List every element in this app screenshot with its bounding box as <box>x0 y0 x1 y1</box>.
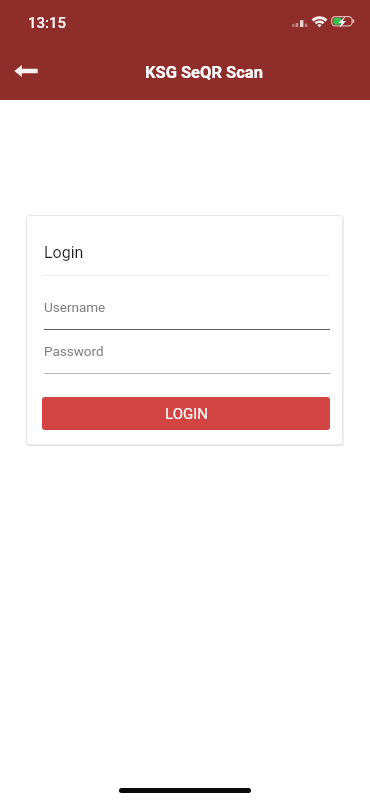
staticText: Login <box>44 243 84 262</box>
staticText: Password <box>44 343 104 359</box>
staticText: Username <box>44 299 106 315</box>
staticText: 13:15 <box>28 14 67 32</box>
button[interactable]: Back <box>2 48 50 94</box>
button[interactable]: LOGIN <box>42 397 330 430</box>
staticText: KSG SeQR Scan <box>145 63 263 82</box>
button[interactable]: Username <box>44 293 330 329</box>
staticText: LOGIN <box>165 405 208 423</box>
button[interactable]: Password <box>44 337 330 373</box>
